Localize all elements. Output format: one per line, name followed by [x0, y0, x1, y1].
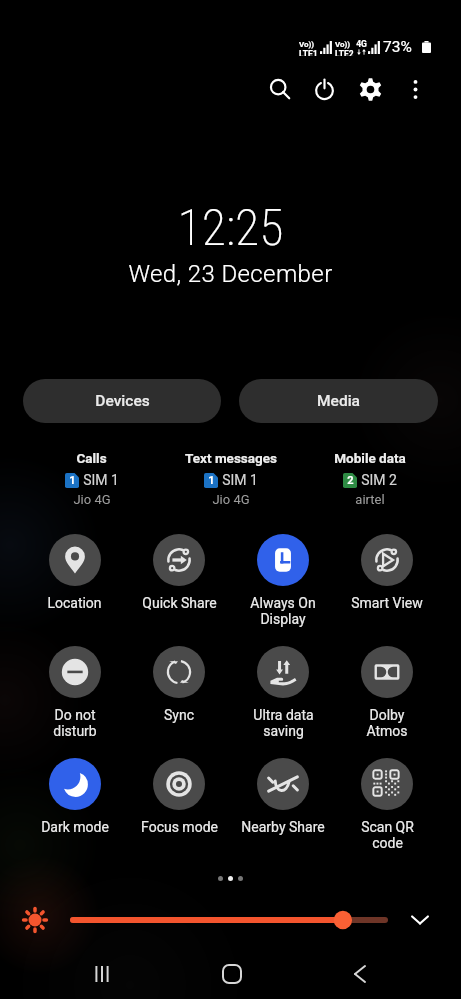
staticText: Calls [76, 450, 107, 466]
staticText: LTE1 [299, 49, 318, 56]
button[interactable]: Ultra data saving [231, 646, 335, 739]
staticText: Wed, 23 December [128, 260, 333, 288]
staticText: airtel [355, 492, 385, 507]
staticText: Quick Share [142, 595, 217, 611]
staticText: Vo)) [335, 40, 351, 49]
staticText: Smart View [351, 595, 423, 611]
staticText: Focus mode [141, 819, 218, 835]
staticText: SIM 1 [222, 472, 258, 488]
staticText: SIM 1 [83, 472, 119, 488]
button[interactable]: Calls [22, 450, 161, 507]
staticText: Ultra data saving [253, 707, 314, 739]
staticText: LTE2 [335, 49, 354, 56]
button[interactable]: Quick Share [127, 534, 231, 611]
button[interactable]: Do not disturb [22, 646, 127, 739]
staticText: 2 [347, 474, 354, 487]
button[interactable]: Settings [348, 67, 392, 111]
staticText: Media [317, 392, 360, 410]
staticText: Jio 4G [73, 492, 111, 507]
button[interactable]: Sync [127, 646, 231, 723]
button[interactable]: Back [330, 949, 390, 999]
button[interactable]: Recents [72, 949, 132, 999]
staticText: 1 [208, 474, 215, 487]
button[interactable]: Focus mode [127, 758, 231, 835]
staticText: Text messages [185, 450, 277, 466]
staticText: Dolby Atmos [366, 707, 408, 739]
staticText: Nearby Share [241, 819, 325, 835]
staticText: 1 [69, 474, 76, 487]
button[interactable]: Search [258, 67, 302, 111]
button[interactable]: Mobile data [300, 450, 439, 507]
button[interactable]: Media [239, 379, 438, 423]
button[interactable]: Dark mode [22, 758, 127, 835]
staticText: Do not disturb [53, 707, 97, 739]
staticText: Devices [95, 392, 150, 410]
staticText: SIM 2 [361, 472, 397, 488]
staticText: Vo)) [299, 40, 315, 49]
button[interactable]: Expand [402, 902, 438, 938]
button[interactable]: Scan QR code [335, 758, 439, 851]
button[interactable]: Power off [302, 67, 346, 111]
button[interactable]: Brightness [18, 903, 52, 937]
button[interactable]: Always On Display [231, 534, 335, 627]
staticText: 4G [356, 39, 367, 49]
button[interactable]: Nearby Share [231, 758, 335, 835]
staticText: Scan QR code [361, 819, 414, 851]
button[interactable]: Home [202, 949, 262, 999]
staticText: 73% [383, 38, 412, 56]
staticText: Always On Display [250, 595, 316, 627]
button[interactable]: Brightness slider [70, 909, 388, 931]
button[interactable]: Text messages [161, 450, 300, 507]
button[interactable]: Location [22, 534, 127, 611]
staticText: Dark mode [41, 819, 109, 835]
button[interactable]: More options [393, 67, 437, 111]
button[interactable]: Smart View [335, 534, 439, 611]
staticText: Jio 4G [212, 492, 250, 507]
staticText: Location [47, 595, 102, 611]
staticText: 12:25 [177, 199, 284, 258]
staticText: Mobile data [334, 450, 406, 466]
button[interactable]: Dolby Atmos [335, 646, 439, 739]
button[interactable]: Devices [23, 379, 221, 423]
staticText: Sync [164, 707, 194, 723]
